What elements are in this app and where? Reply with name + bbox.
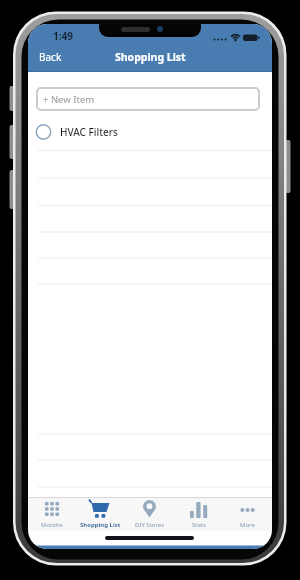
button[interactable]: Shopping List	[76, 497, 125, 531]
button[interactable]: More	[223, 497, 272, 531]
button[interactable]: Back	[32, 46, 68, 68]
staticText: + New Item	[43, 93, 95, 106]
staticText: DIY Stores	[135, 521, 165, 529]
button[interactable]: HVAC Filters	[28, 118, 272, 146]
button[interactable]: + New Item	[36, 87, 260, 111]
button[interactable]: DIY Stores	[125, 497, 174, 531]
button[interactable]: Months	[28, 497, 76, 531]
staticText: Back	[39, 50, 62, 64]
staticText: HVAC Filters	[60, 125, 118, 139]
staticText: Stats	[192, 521, 206, 529]
button[interactable]: Stats	[174, 497, 223, 531]
staticText: Months	[41, 521, 63, 529]
staticText: More	[240, 521, 255, 529]
staticText: Shopping List	[80, 521, 121, 529]
staticText: 1:49	[53, 29, 73, 43]
staticText: Shopping List	[115, 50, 186, 64]
